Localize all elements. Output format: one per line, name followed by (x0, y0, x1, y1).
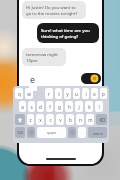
button[interactable]: y (64, 88, 71, 99)
button[interactable]: Emoji reaction (81, 73, 101, 84)
button[interactable]: d (37, 101, 44, 112)
staticText: u (75, 91, 78, 97)
button[interactable]: g (55, 101, 63, 112)
staticText: e (30, 73, 36, 85)
button[interactable]: z (27, 114, 34, 125)
button[interactable]: Emoji (27, 127, 35, 138)
staticText: c (49, 117, 52, 123)
staticText: . (81, 130, 83, 135)
staticText: v (59, 117, 62, 123)
staticText: j (78, 104, 80, 110)
button[interactable]: o (91, 88, 98, 99)
button[interactable]: i (82, 88, 89, 99)
button[interactable]: r (45, 88, 53, 99)
button[interactable]: a (19, 101, 26, 112)
staticText: m (88, 117, 93, 123)
button[interactable]: n (76, 114, 84, 125)
staticText: 123 (17, 130, 24, 135)
button[interactable]: s (28, 101, 35, 112)
staticText: o (93, 91, 96, 97)
staticText: f (49, 104, 51, 110)
button[interactable]: v (56, 114, 64, 125)
staticText: l (98, 104, 100, 110)
staticText: i (85, 91, 87, 97)
staticText: w (27, 91, 31, 97)
button[interactable]: e (27, 71, 39, 86)
staticText: g (58, 104, 61, 110)
staticText: x (39, 117, 42, 123)
staticText: n (79, 117, 82, 123)
staticText: space (47, 130, 57, 135)
button[interactable]: Sure! what time are you thinking of goin… (37, 23, 99, 43)
staticText: d (39, 104, 42, 110)
staticText: p (102, 91, 105, 97)
button[interactable]: b (66, 114, 74, 125)
staticText: tomorrow night 10pm (26, 51, 62, 63)
button[interactable]: Numbers (15, 127, 25, 138)
button[interactable]: h (65, 101, 73, 112)
button[interactable]: return (88, 127, 107, 138)
button[interactable]: m (86, 114, 94, 125)
button[interactable]: c (46, 114, 54, 125)
staticText: t (58, 91, 60, 97)
button[interactable]: u (73, 88, 80, 99)
button[interactable]: w (25, 88, 33, 99)
staticText: s (30, 104, 33, 110)
button[interactable]: x (36, 114, 44, 125)
button[interactable]: l (95, 101, 103, 112)
button[interactable]: . (78, 127, 86, 138)
staticText: r (48, 91, 50, 97)
button[interactable]: k (85, 101, 93, 112)
staticText: b (69, 117, 72, 123)
button[interactable]: p (100, 88, 107, 99)
button[interactable]: f (46, 101, 53, 112)
button[interactable]: Hi Justin! Do you want to go to the movi… (22, 1, 86, 19)
staticText: y (66, 91, 69, 97)
staticText: h (68, 104, 71, 110)
staticText: z (29, 117, 32, 123)
staticText: k (88, 104, 91, 110)
button[interactable]: q (15, 88, 23, 99)
button[interactable]: Dictation (68, 127, 76, 138)
staticText: a (21, 104, 24, 110)
button[interactable]: t (55, 88, 62, 99)
button[interactable]: space (37, 127, 66, 138)
staticText: q (18, 91, 21, 97)
staticText: Hi Justin! Do you want to go to the movi… (26, 4, 78, 16)
staticText: Sure! what time are you thinking of goin… (41, 27, 90, 39)
staticText: return (93, 131, 103, 135)
button[interactable]: Shift (15, 114, 25, 125)
button[interactable]: Backspace (96, 114, 107, 125)
button[interactable]: j (75, 101, 83, 112)
button[interactable]: tomorrow night 10pm (22, 48, 66, 66)
